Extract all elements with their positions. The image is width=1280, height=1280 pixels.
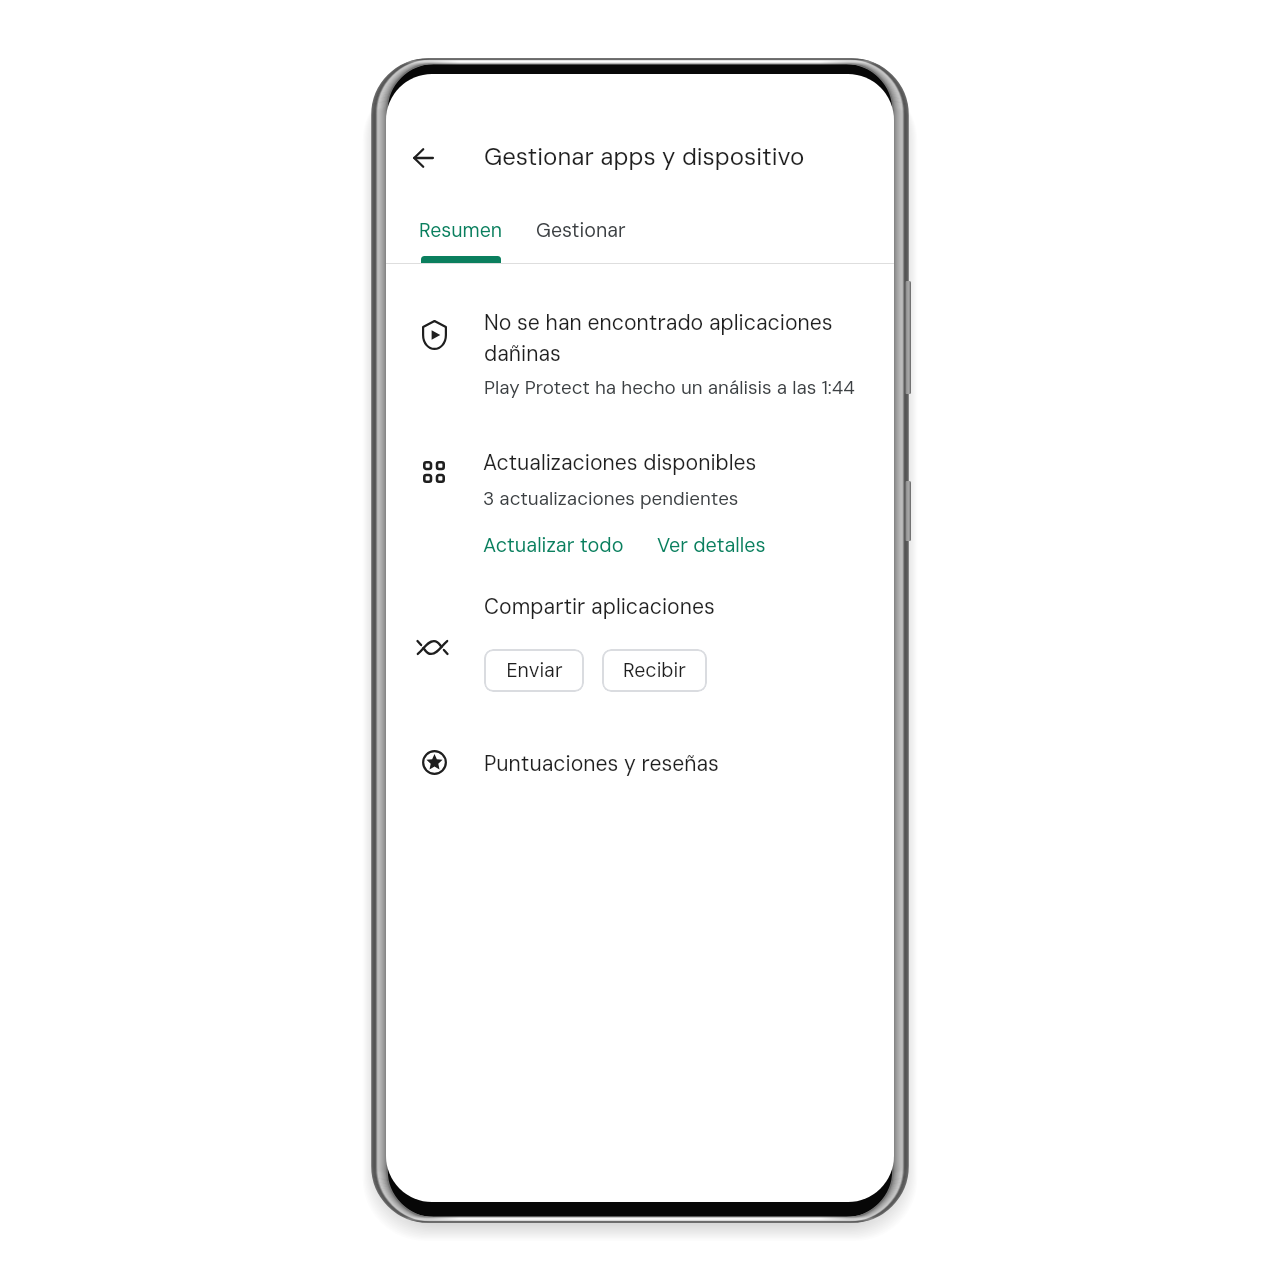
staticText: Resumen	[419, 218, 503, 244]
button[interactable]: Resumen	[400, 203, 520, 263]
staticText: Enviar	[506, 658, 563, 684]
button[interactable]: Actualizar todo	[477, 528, 630, 562]
button[interactable]: Gestionar	[520, 203, 640, 263]
staticText: Play Protect ha hecho un análisis a las …	[484, 375, 855, 399]
staticText: Recibir	[623, 658, 686, 684]
staticText: Actualizaciones disponibles	[483, 449, 757, 477]
staticText: Gestionar apps y dispositivo	[484, 141, 805, 172]
staticText: Actualizar todo	[483, 532, 624, 558]
staticText: Ver detalles	[657, 532, 766, 558]
button[interactable]: Enviar	[484, 649, 584, 692]
staticText: Puntuaciones y reseñas	[484, 750, 719, 778]
button[interactable]: Recibir	[602, 649, 707, 692]
button[interactable]: Ver detalles	[651, 528, 771, 562]
staticText: No se han encontrado aplicaciones dañina…	[484, 309, 854, 367]
button[interactable]: No se han encontrado aplicaciones dañina…	[400, 294, 880, 404]
button[interactable]: Puntuaciones y reseñas	[400, 736, 880, 790]
staticText: Compartir aplicaciones	[484, 593, 715, 621]
staticText: Gestionar	[536, 218, 626, 244]
button[interactable]: Atrás	[399, 134, 447, 182]
staticText: 3 actualizaciones pendientes	[483, 486, 739, 510]
button[interactable]: Actualizaciones disponibles	[400, 436, 880, 511]
